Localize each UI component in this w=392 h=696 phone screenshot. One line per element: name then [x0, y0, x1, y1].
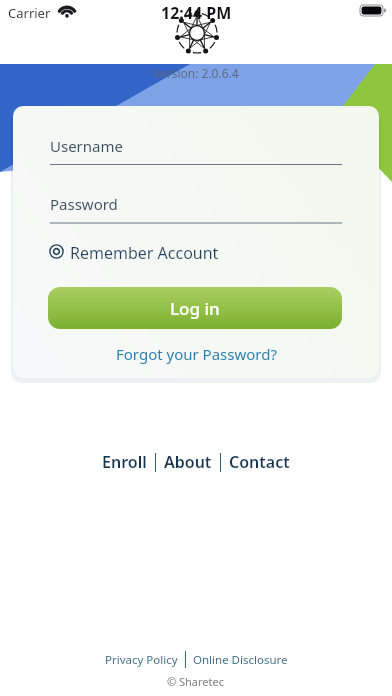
button[interactable] [43, 238, 223, 264]
button[interactable]: Username [50, 136, 342, 162]
staticText: Version: 2.0.6.4 [153, 65, 239, 81]
staticText: Username [50, 136, 123, 156]
staticText: Forgot your Password? [116, 344, 277, 364]
staticText: Enroll [102, 451, 147, 473]
staticText: © Sharetec [167, 674, 225, 689]
button[interactable]: Online Disclosure [190, 652, 291, 668]
button[interactable]: Log in [48, 287, 342, 329]
button[interactable]: Password [50, 194, 342, 220]
staticText: 12:44 PM [161, 2, 232, 24]
staticText: About [164, 451, 212, 473]
button[interactable]: Privacy Policy [102, 652, 181, 668]
staticText: Password [50, 194, 118, 214]
staticText: Contact [229, 451, 290, 473]
button[interactable]: Forgot your Password? [116, 344, 277, 364]
button[interactable]: Enroll [99, 451, 150, 473]
staticText: Online Disclosure [193, 652, 288, 668]
button[interactable]: Contact [226, 451, 293, 473]
staticText: Privacy Policy [105, 652, 178, 668]
staticText: Remember Account [70, 242, 219, 264]
button[interactable]: About [161, 451, 215, 473]
staticText: Log in [170, 297, 220, 320]
staticText: Carrier [8, 4, 51, 22]
